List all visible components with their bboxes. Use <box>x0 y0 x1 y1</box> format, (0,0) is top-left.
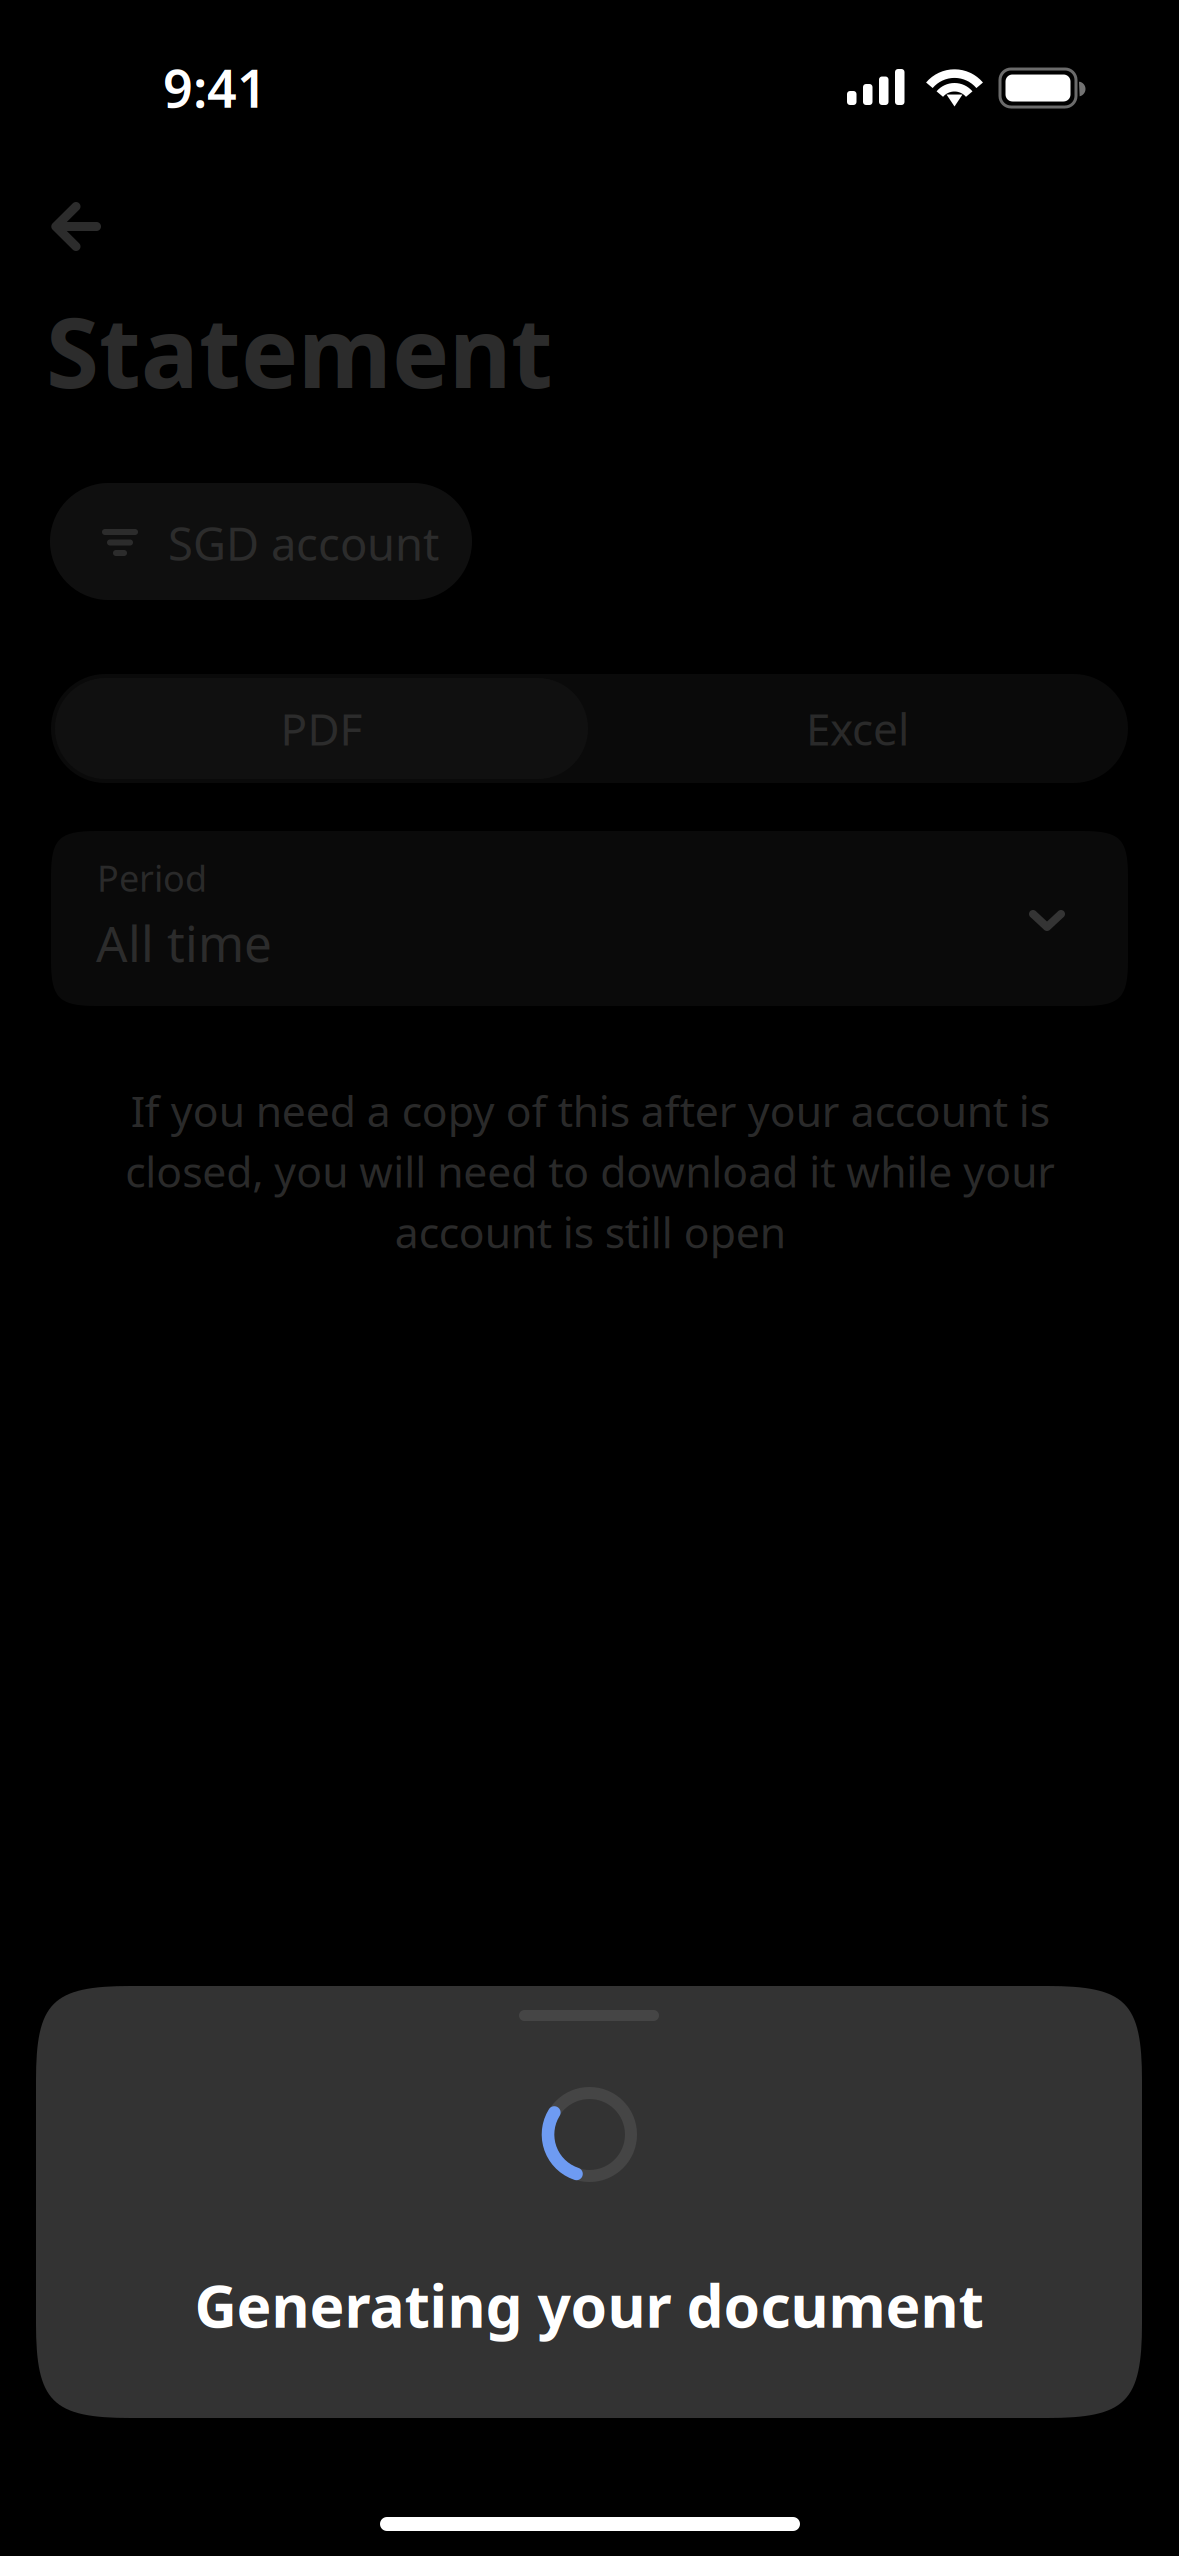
staticText: If you need a copy of this after your ac… <box>125 1082 1055 1260</box>
staticText: Statement <box>46 287 553 414</box>
button[interactable]: Excel <box>591 678 1124 779</box>
staticText: PDF <box>280 699 362 758</box>
button[interactable]: PDF <box>55 678 588 779</box>
button[interactable]: SGD account <box>50 483 472 600</box>
staticText: Excel <box>806 699 909 758</box>
button[interactable]: Period <box>51 831 1128 1006</box>
staticText: SGD account <box>168 513 439 573</box>
staticText: 9:41 <box>163 53 267 122</box>
button[interactable]: Back <box>30 180 130 276</box>
staticText: All time <box>96 910 272 975</box>
staticText: Generating your document <box>194 2266 983 2344</box>
staticText: Period <box>97 854 207 902</box>
